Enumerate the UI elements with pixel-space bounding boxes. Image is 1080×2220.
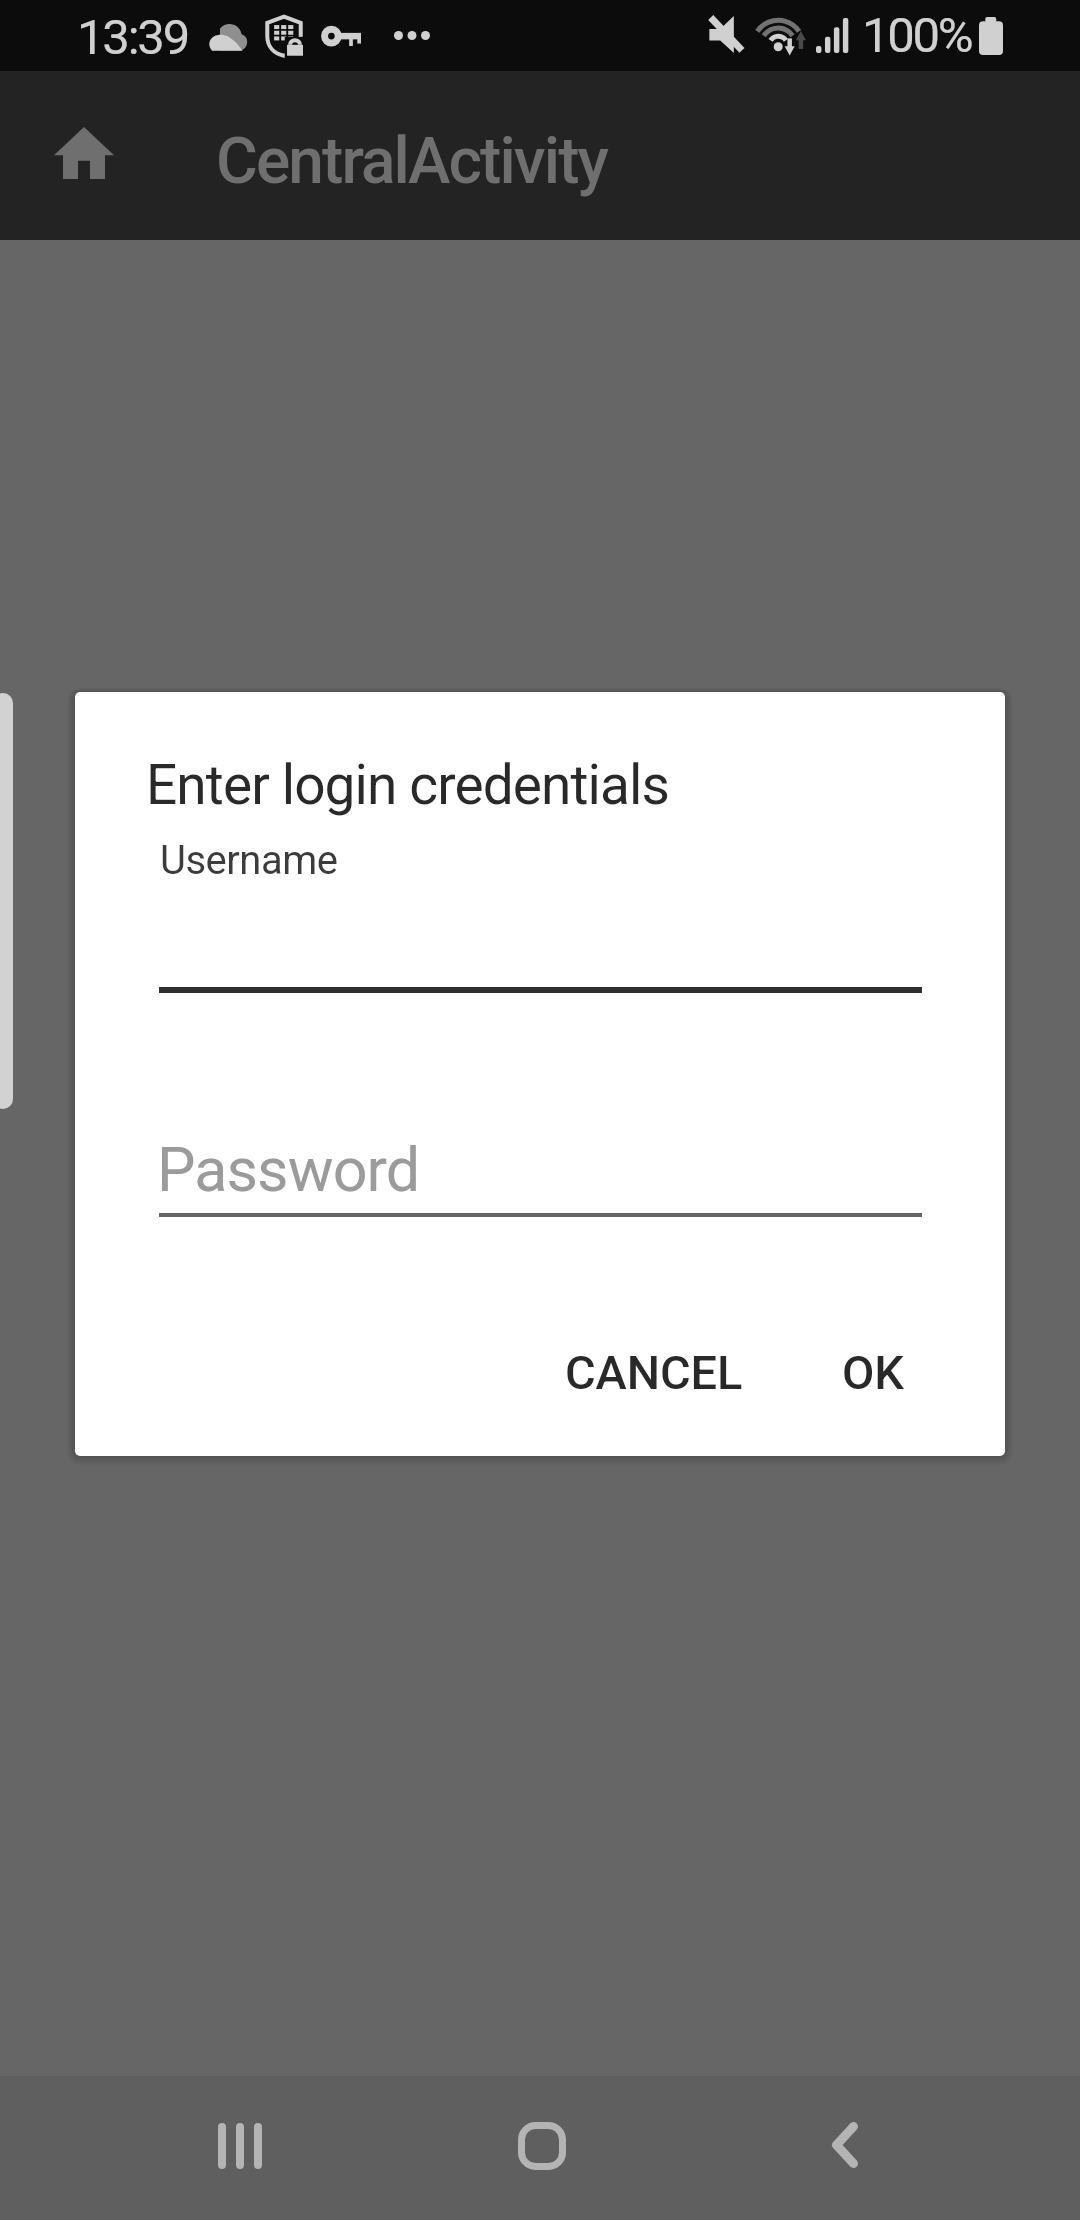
button[interactable]: Home [24, 93, 144, 213]
staticText: 13:39 [77, 9, 189, 66]
button[interactable]: OK [808, 1322, 938, 1423]
staticText: 100% [862, 7, 972, 64]
staticText: CANCEL [565, 1345, 743, 1400]
button[interactable]: Back [795, 2084, 895, 2206]
staticText: OK [842, 1345, 904, 1400]
button[interactable]: Password [159, 1112, 922, 1217]
button[interactable]: Recent apps [190, 2085, 290, 2207]
staticText: Enter login credentials [146, 753, 670, 817]
staticText: CentralActivity [216, 124, 607, 199]
staticText: Password [157, 1134, 420, 1205]
button[interactable]: Home [492, 2085, 592, 2207]
button[interactable]: Username [159, 824, 922, 993]
staticText: Username [160, 837, 338, 884]
button[interactable]: CANCEL [531, 1322, 777, 1423]
